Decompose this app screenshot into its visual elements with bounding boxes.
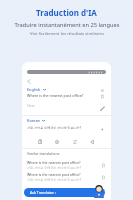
staticText: Voir facilement les résultats similaires bbox=[30, 31, 104, 37]
button[interactable]: Listen bbox=[100, 127, 105, 132]
staticText: 가장 가까운 우체국이 어디에 있습니까? bbox=[27, 166, 82, 170]
staticText: 가장 가까운 우체국이 어디에 있습니까? bbox=[27, 178, 82, 182]
button[interactable]: Copy bbox=[37, 139, 43, 145]
staticText: Ask Translator › bbox=[30, 190, 57, 195]
staticText: Where is the nearest post office? bbox=[27, 160, 81, 165]
button[interactable]: Ask Translator › bbox=[24, 188, 105, 197]
staticText: Traduction d'IA bbox=[36, 7, 97, 18]
button[interactable]: Copy bbox=[101, 163, 106, 168]
button[interactable]: Back bbox=[25, 78, 32, 85]
button[interactable]: Favorite bbox=[54, 139, 60, 145]
button[interactable]: Korean bbox=[27, 118, 105, 123]
staticText: 가장 가까운 우체국이 어디에 있습니까? bbox=[27, 126, 82, 130]
button[interactable]: Where is the nearest post office? bbox=[27, 160, 106, 170]
button[interactable]: Share bbox=[89, 139, 95, 145]
button[interactable]: Copy bbox=[101, 175, 106, 180]
staticText: Where is the nearest post office? bbox=[27, 172, 81, 177]
staticText: English bbox=[27, 87, 41, 92]
button[interactable]: Copy source bbox=[100, 94, 105, 99]
button[interactable]: Where is the nearest post office? bbox=[27, 172, 106, 182]
staticText: Where is the nearest post office? bbox=[27, 93, 106, 98]
button[interactable]: Edit bbox=[99, 105, 106, 112]
staticText: Clear bbox=[27, 104, 35, 108]
staticText: Traduire instantanément en 25 langues bbox=[14, 21, 120, 29]
button[interactable]: Clear text bbox=[100, 88, 105, 93]
button[interactable]: English bbox=[27, 87, 105, 92]
staticText: Korean bbox=[27, 118, 40, 123]
button[interactable]: Transliterate bbox=[72, 139, 78, 145]
staticText: Similar translations bbox=[27, 151, 60, 156]
